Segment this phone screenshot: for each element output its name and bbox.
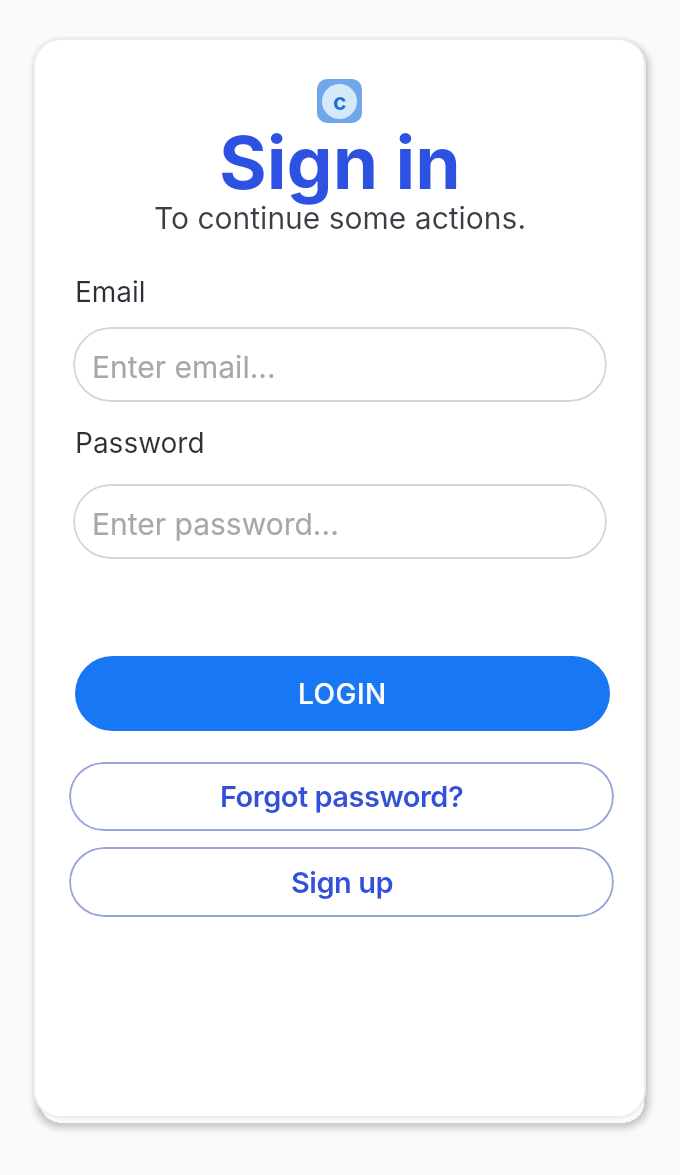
staticText: To continue some actions. <box>154 200 527 236</box>
staticText: Sign in <box>219 118 461 206</box>
button[interactable]: LOGIN <box>75 656 610 731</box>
staticText: Enter email... <box>92 349 276 385</box>
staticText: Enter password... <box>92 506 339 542</box>
staticText: c <box>333 88 347 116</box>
button[interactable]: Enter password... <box>73 484 607 559</box>
staticText: Email <box>75 275 146 309</box>
button[interactable]: Forgot password? <box>69 762 614 831</box>
staticText: LOGIN <box>298 677 387 711</box>
button[interactable]: Sign up <box>69 847 614 917</box>
staticText: Password <box>75 426 205 460</box>
button[interactable]: Enter email... <box>73 327 607 402</box>
staticText: Sign up <box>291 865 393 900</box>
staticText: Forgot password? <box>220 779 464 814</box>
